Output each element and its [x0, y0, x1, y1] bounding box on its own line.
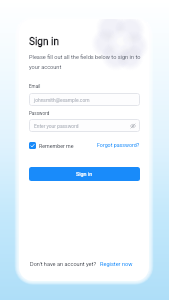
- button[interactable]: johnsmith@example.com: [29, 93, 140, 106]
- button[interactable]: Register now: [100, 261, 133, 268]
- button[interactable]: Forgot password?: [97, 142, 140, 148]
- staticText: Password: [29, 111, 50, 116]
- staticText: Email: [29, 84, 41, 89]
- staticText: Forgot password?: [97, 142, 140, 148]
- staticText: Sign in: [29, 36, 59, 48]
- staticText: Don't have an account yet?: [30, 261, 97, 268]
- staticText: Enter your password: [34, 123, 79, 129]
- button[interactable]: Sign in: [29, 167, 140, 181]
- button[interactable]: Remember me: [29, 142, 74, 149]
- staticText: Remember me: [39, 143, 74, 149]
- button[interactable]: Show password: [130, 123, 136, 129]
- staticText: Register now: [100, 261, 133, 268]
- staticText: Please fill out all the fields below to …: [29, 54, 144, 70]
- staticText: Sign in: [76, 171, 93, 177]
- staticText: johnsmith@example.com: [34, 97, 90, 103]
- button[interactable]: Enter your password: [29, 119, 140, 132]
